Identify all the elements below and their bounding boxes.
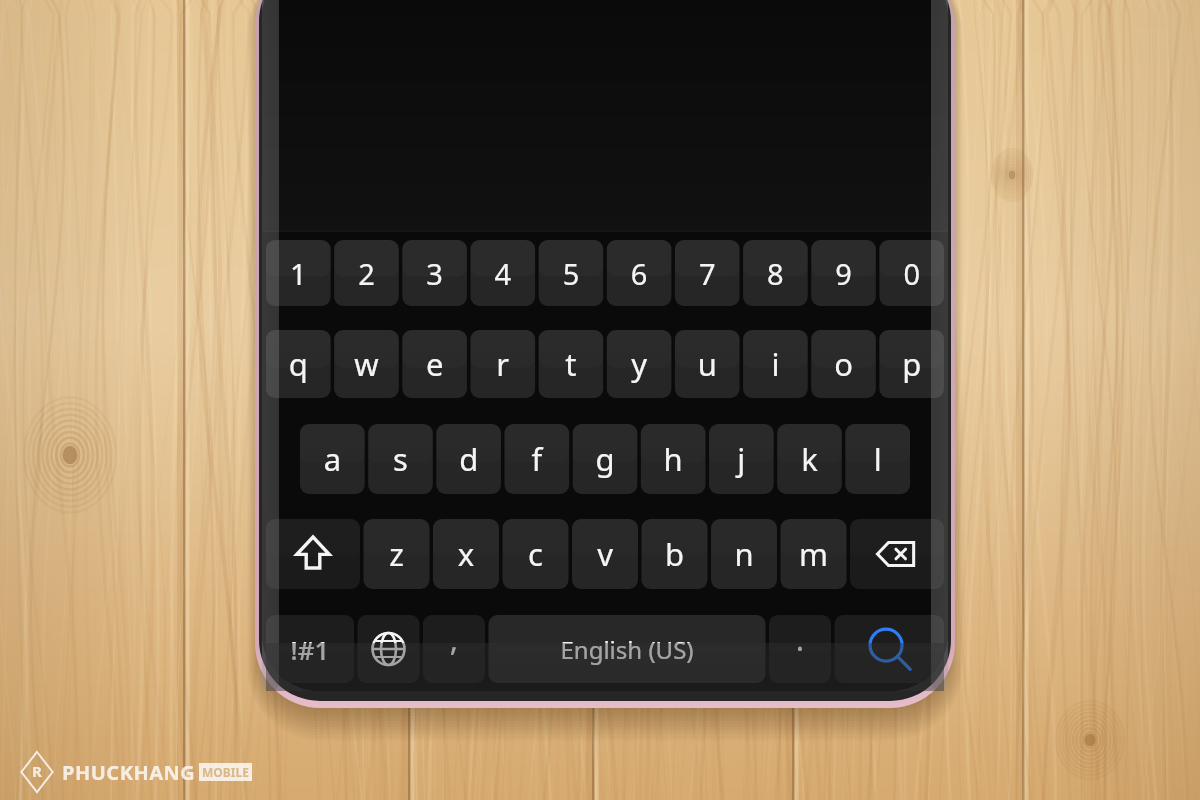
button[interactable]: Search	[835, 615, 945, 683]
button[interactable]	[436, 424, 501, 494]
button[interactable]	[879, 330, 944, 398]
button[interactable]	[709, 424, 774, 494]
button[interactable]	[433, 519, 499, 589]
button[interactable]	[368, 424, 433, 494]
button[interactable]	[503, 519, 569, 589]
button[interactable]	[781, 519, 847, 589]
button[interactable]	[845, 424, 910, 494]
button[interactable]	[811, 330, 876, 398]
button[interactable]	[266, 330, 331, 398]
button[interactable]	[743, 240, 808, 306]
button[interactable]	[572, 519, 638, 589]
button[interactable]	[539, 330, 604, 398]
button[interactable]	[573, 424, 638, 494]
button[interactable]	[743, 330, 808, 398]
button[interactable]	[675, 240, 740, 306]
button[interactable]	[334, 240, 399, 306]
button[interactable]	[641, 424, 706, 494]
button[interactable]	[879, 240, 944, 306]
button[interactable]	[402, 330, 467, 398]
button[interactable]	[266, 240, 331, 306]
button[interactable]	[607, 240, 672, 306]
button[interactable]	[423, 615, 485, 683]
button[interactable]	[539, 240, 604, 306]
button[interactable]	[402, 240, 467, 306]
button[interactable]	[777, 424, 842, 494]
button[interactable]	[675, 330, 740, 398]
button[interactable]	[364, 519, 430, 589]
button[interactable]	[811, 240, 876, 306]
button[interactable]	[711, 519, 777, 589]
button[interactable]	[470, 240, 535, 306]
button[interactable]	[642, 519, 708, 589]
button[interactable]: Change language	[358, 615, 420, 683]
button[interactable]	[300, 424, 365, 494]
button[interactable]	[334, 330, 399, 398]
button[interactable]: Shift	[266, 519, 360, 589]
button[interactable]	[607, 330, 672, 398]
button[interactable]	[489, 615, 766, 683]
button[interactable]: Backspace	[850, 519, 944, 589]
button[interactable]	[769, 615, 831, 683]
button[interactable]	[266, 615, 354, 683]
button[interactable]	[505, 424, 570, 494]
button[interactable]	[470, 330, 535, 398]
